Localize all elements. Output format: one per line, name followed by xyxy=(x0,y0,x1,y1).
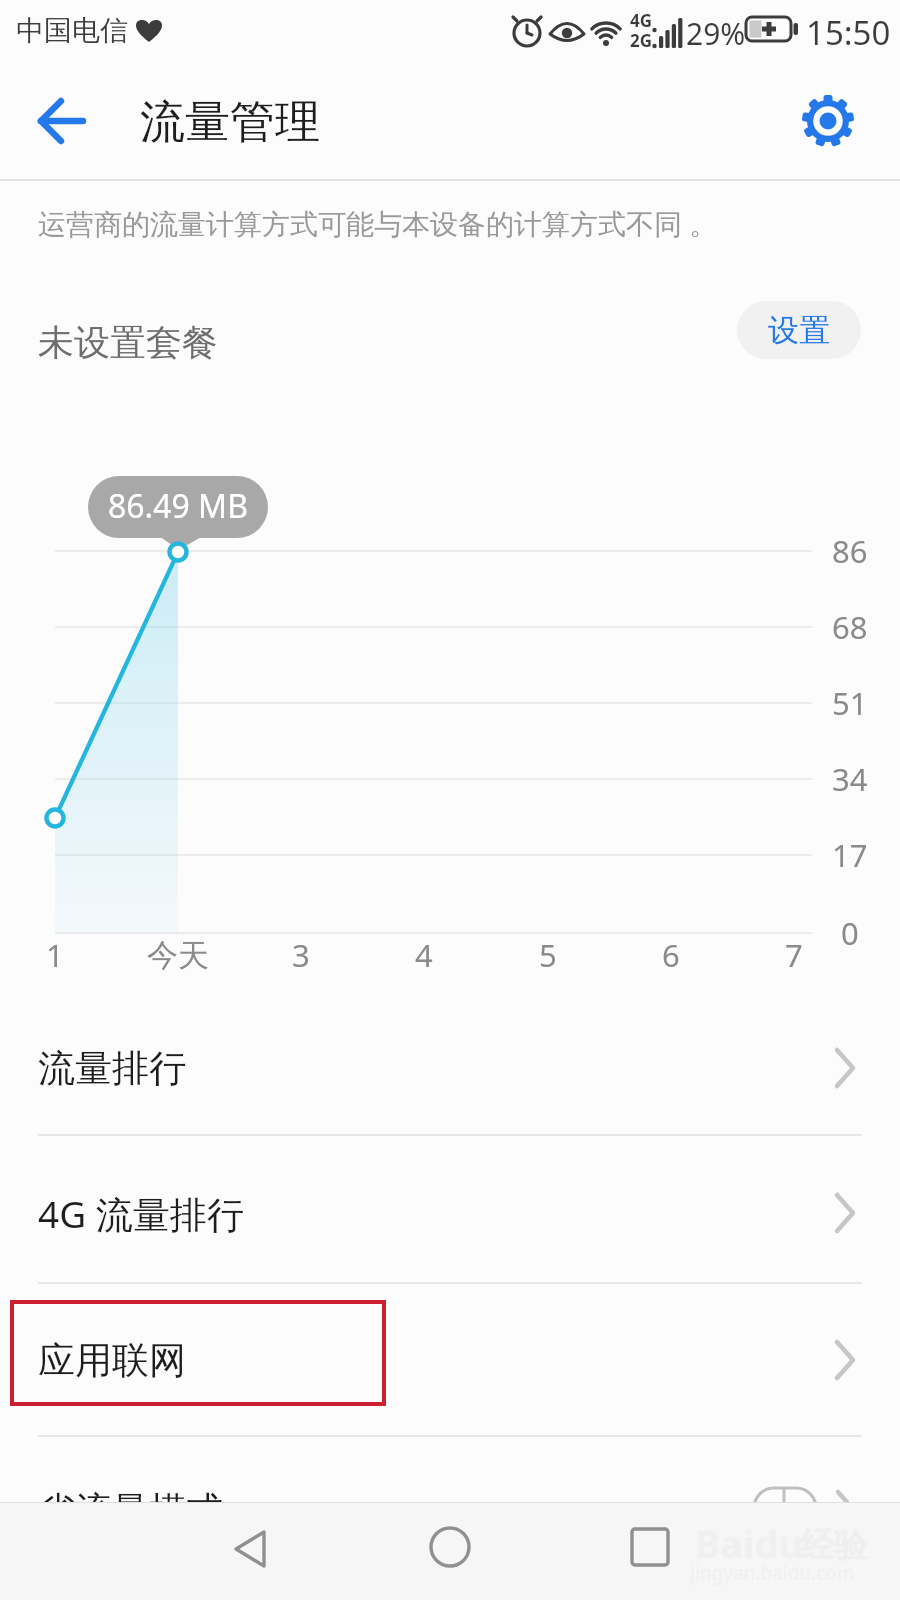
staticText: 省流量模式 xyxy=(38,1487,223,1534)
button[interactable] xyxy=(798,91,858,151)
staticText: 经验 xyxy=(800,1524,868,1567)
button[interactable] xyxy=(221,1519,281,1579)
button[interactable]: 应用联网 xyxy=(0,1284,900,1436)
staticText: 流量排行 xyxy=(38,1045,186,1092)
staticText: 4G xyxy=(630,9,653,32)
staticText: 0 xyxy=(841,912,859,954)
staticText: 4 xyxy=(415,934,433,976)
button[interactable] xyxy=(30,91,94,151)
staticText: 5 xyxy=(539,934,557,976)
staticText: 今天 xyxy=(147,936,209,975)
staticText: 6 xyxy=(662,934,680,976)
staticText: 4G 流量排行 xyxy=(38,1188,244,1239)
staticText: 1 xyxy=(46,934,64,976)
staticText: 设置 xyxy=(768,311,830,350)
button[interactable]: 设置 xyxy=(737,301,861,359)
staticText: 2G xyxy=(630,29,653,52)
staticText: 7 xyxy=(785,934,803,976)
button[interactable] xyxy=(620,1517,680,1577)
staticText: 未设置套餐 xyxy=(38,320,218,365)
staticText: 34 xyxy=(832,758,868,800)
staticText: 86.49 MB xyxy=(108,484,248,528)
staticText: 流量管理 xyxy=(140,94,320,151)
button[interactable]: 4G 流量排行 xyxy=(0,1142,900,1284)
staticText: 51 xyxy=(832,682,868,724)
staticText: 应用联网 xyxy=(38,1337,186,1384)
staticText: 17 xyxy=(832,834,868,876)
staticText: 15:50 xyxy=(806,10,891,55)
button[interactable]: 流量排行 xyxy=(0,1000,900,1136)
button[interactable] xyxy=(420,1517,480,1577)
staticText: 29% xyxy=(686,13,746,54)
staticText: 运营商的流量计算方式可能与本设备的计算方式不同 。 xyxy=(38,204,718,242)
staticText: 86 xyxy=(832,530,868,572)
staticText: 68 xyxy=(832,606,868,648)
staticText: 3 xyxy=(292,934,310,976)
staticText: 中国电信 xyxy=(16,13,128,48)
